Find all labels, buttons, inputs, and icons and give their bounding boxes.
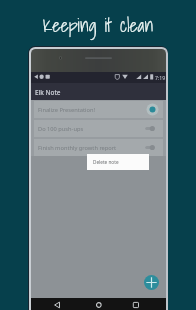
button[interactable]: Finish monthly growth report [34, 139, 163, 156]
staticText: Keeping it clean [0, 11, 196, 40]
staticText: Finalize Presentation! [38, 106, 139, 114]
staticText: Do 100 push-ups [38, 125, 139, 133]
button[interactable]: Do 100 push-ups [34, 120, 163, 137]
button[interactable]: Delete note [87, 154, 149, 170]
button[interactable]: Finalize Presentation! [34, 101, 163, 118]
staticText: Elk Note [35, 88, 61, 97]
button[interactable]: Add note [144, 275, 159, 290]
staticText: 7:19 [155, 74, 166, 81]
staticText: Finish monthly growth report [38, 144, 139, 152]
staticText: Delete note [93, 159, 119, 165]
other: System navigation bar [31, 298, 166, 310]
